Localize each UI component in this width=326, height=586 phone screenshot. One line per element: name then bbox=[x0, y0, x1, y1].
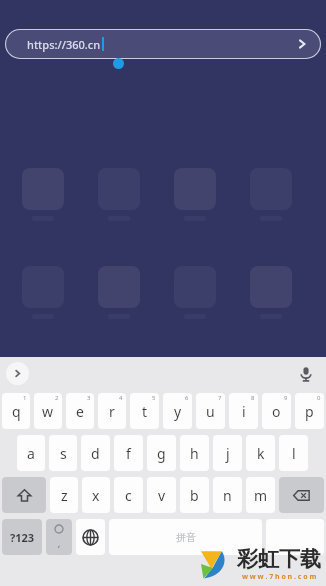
staticText: 7 bbox=[218, 394, 222, 402]
button[interactable]: g bbox=[147, 435, 176, 471]
staticText: 6 bbox=[185, 394, 189, 402]
staticText: e bbox=[76, 402, 84, 421]
button[interactable]: 拼音 bbox=[109, 519, 262, 555]
button[interactable]: Voice input bbox=[294, 362, 318, 386]
staticText: u bbox=[206, 402, 215, 421]
button[interactable]: n bbox=[213, 477, 242, 513]
staticText: k bbox=[257, 444, 265, 463]
button[interactable]: l bbox=[279, 435, 308, 471]
button[interactable]: s bbox=[49, 435, 77, 471]
button[interactable]: Emoji and comma bbox=[46, 519, 72, 555]
staticText: i bbox=[242, 402, 246, 421]
staticText: q bbox=[12, 402, 21, 421]
button[interactable]: c bbox=[114, 477, 143, 513]
staticText: 3 bbox=[87, 394, 91, 402]
button[interactable]: w bbox=[34, 393, 62, 429]
staticText: l bbox=[292, 444, 296, 463]
button[interactable]: https://360.cn bbox=[5, 29, 321, 59]
staticText: 拼音 bbox=[176, 531, 196, 544]
staticText: o bbox=[272, 402, 281, 421]
staticText: m bbox=[254, 486, 268, 505]
staticText: 8 bbox=[251, 394, 255, 402]
staticText: d bbox=[91, 444, 100, 463]
button[interactable]: t bbox=[130, 393, 159, 429]
button[interactable]: Go bbox=[289, 31, 315, 57]
staticText: a bbox=[27, 444, 35, 463]
button[interactable]: p bbox=[295, 393, 324, 429]
staticText: w bbox=[42, 402, 54, 421]
button[interactable]: b bbox=[180, 477, 209, 513]
staticText: c bbox=[125, 486, 132, 505]
staticText: ?123 bbox=[10, 530, 35, 545]
button[interactable]: u bbox=[196, 393, 225, 429]
button[interactable]: Expand suggestions bbox=[6, 362, 29, 385]
button[interactable]: Change language bbox=[76, 519, 105, 555]
staticText: t bbox=[142, 402, 148, 421]
button[interactable]: Shift bbox=[2, 477, 46, 513]
button[interactable]: m bbox=[246, 477, 275, 513]
staticText: 4 bbox=[119, 394, 123, 402]
staticText: x bbox=[92, 486, 100, 505]
button[interactable]: x bbox=[82, 477, 110, 513]
button[interactable]: q bbox=[2, 393, 30, 429]
staticText: v bbox=[158, 486, 166, 505]
staticText: 彩虹下载 bbox=[237, 546, 321, 572]
staticText: j bbox=[226, 444, 230, 463]
staticText: https://360.cn bbox=[27, 37, 101, 52]
button[interactable]: j bbox=[213, 435, 242, 471]
staticText: h bbox=[190, 444, 199, 463]
button[interactable]: z bbox=[50, 477, 78, 513]
button[interactable]: v bbox=[147, 477, 176, 513]
staticText: p bbox=[305, 402, 314, 421]
button[interactable]: Backspace bbox=[279, 477, 324, 513]
button[interactable]: y bbox=[163, 393, 192, 429]
button[interactable]: d bbox=[81, 435, 110, 471]
button[interactable]: h bbox=[180, 435, 209, 471]
staticText: s bbox=[60, 444, 67, 463]
staticText: g bbox=[157, 444, 166, 463]
staticText: n bbox=[223, 486, 232, 505]
staticText: w w w . 7 h o n . c o m bbox=[242, 572, 317, 582]
button[interactable]: e bbox=[66, 393, 94, 429]
button[interactable]: f bbox=[114, 435, 143, 471]
staticText: b bbox=[190, 486, 199, 505]
staticText: 9 bbox=[284, 394, 288, 402]
button[interactable]: o bbox=[262, 393, 291, 429]
staticText: 1 bbox=[23, 394, 27, 402]
button[interactable]: Enter bbox=[266, 519, 324, 555]
staticText: , bbox=[58, 538, 61, 549]
staticText: r bbox=[109, 402, 115, 421]
button[interactable]: i bbox=[229, 393, 258, 429]
staticText: z bbox=[61, 486, 68, 505]
staticText: 2 bbox=[55, 394, 59, 402]
button[interactable]: ?123 bbox=[2, 519, 42, 555]
staticText: f bbox=[126, 444, 131, 463]
button[interactable]: a bbox=[17, 435, 45, 471]
staticText: 0 bbox=[317, 394, 321, 402]
staticText: 5 bbox=[152, 394, 156, 402]
staticText: y bbox=[174, 402, 182, 421]
button[interactable]: k bbox=[246, 435, 275, 471]
button[interactable]: r bbox=[98, 393, 126, 429]
